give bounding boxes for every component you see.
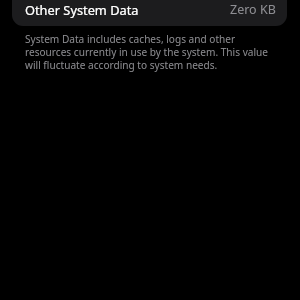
staticText: Zero KB [230,1,276,18]
staticText: Other System Data [25,1,139,18]
button[interactable]: Other System Data [12,0,287,26]
staticText: System Data includes caches, logs and ot… [25,32,277,72]
